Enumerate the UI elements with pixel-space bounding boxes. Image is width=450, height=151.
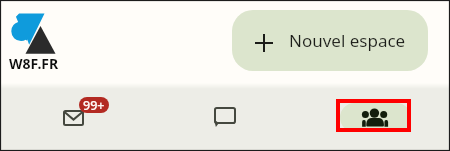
- button[interactable]: Nouvel espace: [232, 10, 428, 71]
- button[interactable]: Chat: [150, 89, 300, 151]
- staticText: 99+: [83, 97, 105, 113]
- button[interactable]: Mail: [0, 89, 150, 151]
- button[interactable]: Spaces: [300, 89, 450, 151]
- staticText: Nouvel espace: [289, 29, 406, 52]
- staticText: W8F.FR: [9, 54, 59, 73]
